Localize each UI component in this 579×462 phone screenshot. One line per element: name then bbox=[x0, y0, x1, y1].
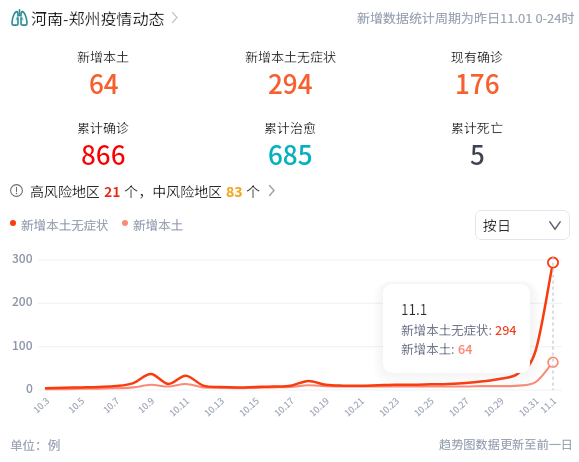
staticText: 新增数据统计周期为昨日11.01 0-24时 bbox=[357, 8, 575, 27]
staticText: 685 bbox=[268, 135, 313, 173]
staticText: 64 bbox=[89, 64, 119, 102]
staticText: 累计死亡 bbox=[451, 118, 504, 137]
staticText: 累计治愈 bbox=[264, 118, 317, 137]
staticText: 5 bbox=[470, 135, 485, 173]
staticText: 个，中风险地区 bbox=[121, 181, 226, 200]
button[interactable]: 按日 bbox=[475, 210, 570, 240]
staticText: 现有确诊 bbox=[451, 47, 504, 66]
staticText: 河南-郑州疫情动态 bbox=[31, 6, 165, 29]
staticText: 趋势图数据更新至前一日 bbox=[439, 435, 574, 453]
staticText: 新增本土无症状 bbox=[21, 215, 109, 231]
staticText: 高风险地区 bbox=[30, 181, 104, 200]
staticText: 新增本土无症状 bbox=[245, 47, 337, 66]
staticText: 按日 bbox=[483, 215, 511, 235]
staticText: 单位：例 bbox=[10, 435, 61, 453]
staticText: 21 bbox=[104, 181, 121, 200]
staticText: 新增本土 bbox=[77, 47, 130, 66]
staticText: 新增本土: bbox=[401, 339, 458, 357]
staticText: 个 bbox=[243, 181, 267, 200]
staticText: 866 bbox=[81, 135, 126, 173]
staticText: 新增本土 bbox=[133, 215, 184, 231]
button[interactable]: 高风险地区 bbox=[10, 181, 276, 200]
staticText: 294 bbox=[495, 320, 517, 338]
staticText: 176 bbox=[455, 64, 500, 102]
staticText: 294 bbox=[268, 64, 313, 102]
staticText: 64 bbox=[458, 339, 473, 357]
staticText: 11.1 bbox=[401, 299, 428, 319]
staticText: 新增本土无症状: bbox=[401, 320, 495, 338]
staticText: 83 bbox=[226, 181, 243, 200]
button[interactable]: 河南-郑州疫情动态 bbox=[10, 6, 179, 29]
staticText: 累计确诊 bbox=[77, 118, 130, 137]
